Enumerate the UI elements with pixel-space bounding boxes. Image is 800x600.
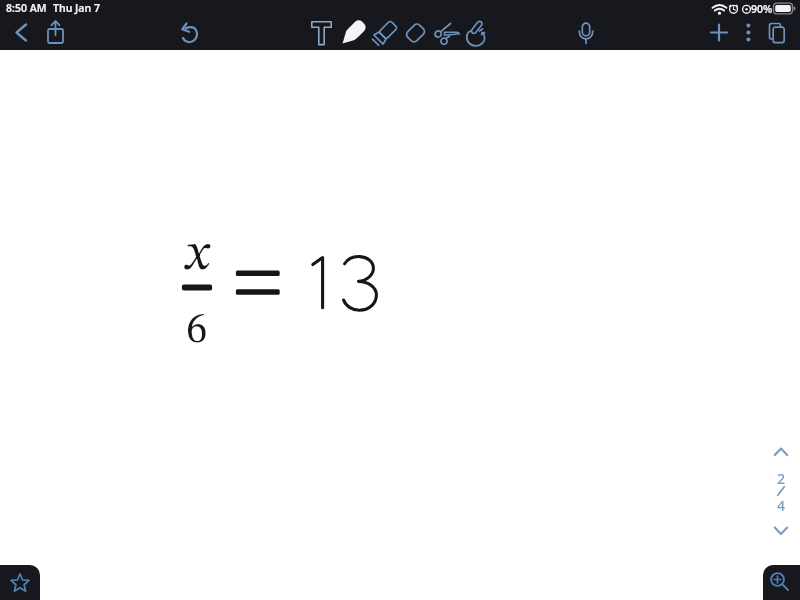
button[interactable]: [44, 18, 68, 46]
button[interactable]: [402, 19, 429, 47]
button[interactable]: [707, 20, 731, 46]
button[interactable]: [339, 19, 367, 47]
button[interactable]: [764, 20, 791, 47]
button[interactable]: [461, 19, 489, 47]
button[interactable]: [432, 19, 460, 47]
staticText: 2: [777, 469, 786, 488]
staticText: Thu Jan 7: [53, 1, 100, 15]
button[interactable]: [737, 20, 759, 46]
staticText: x: [186, 230, 210, 281]
staticText: 4: [777, 496, 786, 515]
button[interactable]: [766, 522, 796, 542]
button[interactable]: [573, 19, 599, 47]
button[interactable]: [0, 565, 40, 600]
button[interactable]: [763, 565, 800, 600]
button[interactable]: [766, 440, 796, 460]
button[interactable]: [176, 20, 201, 46]
button[interactable]: [371, 19, 399, 47]
staticText: 8:50 AM: [6, 1, 47, 15]
button[interactable]: [8, 20, 34, 46]
staticText: 6: [186, 309, 208, 352]
staticText: 90%: [751, 2, 773, 16]
button[interactable]: [308, 19, 335, 47]
